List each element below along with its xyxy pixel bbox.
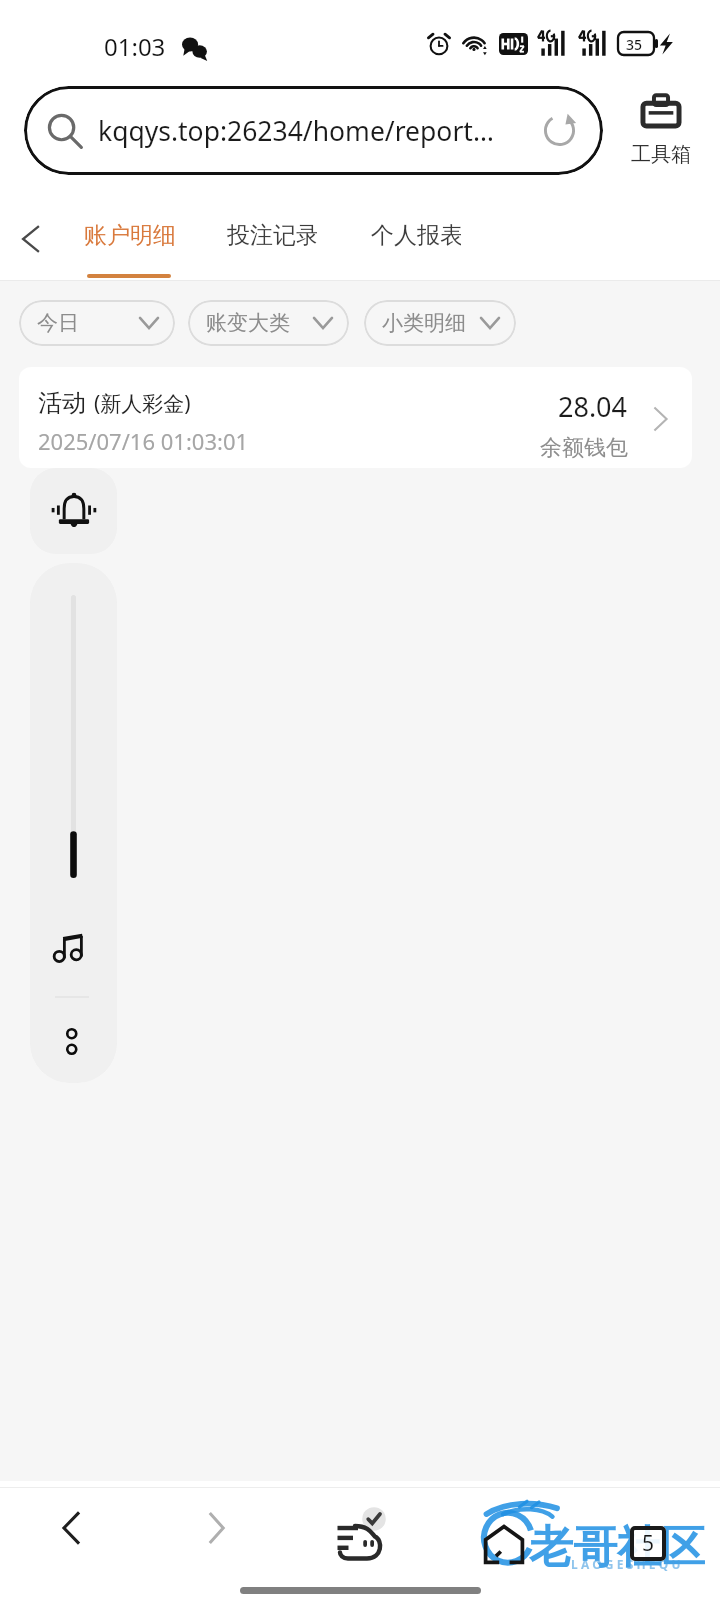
button[interactable]: Tabs <box>613 1508 683 1578</box>
button[interactable]: 账变大类 <box>188 300 349 346</box>
button[interactable]: 投注记录 <box>227 221 317 250</box>
button[interactable]: Home <box>469 1509 539 1579</box>
staticText: 投注记录 <box>227 221 317 250</box>
staticText: 活动 <box>38 388 86 418</box>
staticText: 01:03 <box>104 30 166 63</box>
button[interactable]: 小类明细 <box>364 300 516 346</box>
other: Refresh <box>541 112 578 149</box>
staticText: 2025/07/16 01:03:01 <box>38 426 249 456</box>
button[interactable]: Back <box>0 206 62 272</box>
button[interactable]: 工具箱 <box>622 90 700 167</box>
staticText: 老哥社区 <box>529 1520 705 1575</box>
button[interactable]: 活动 <box>19 367 692 468</box>
staticText: 35 <box>626 35 643 54</box>
staticText: LAOGESHEQU <box>571 1556 684 1572</box>
staticText: 5 <box>642 1529 655 1558</box>
staticText: kqqys.top:26234/home/report… <box>98 113 494 149</box>
button[interactable]: Ring mode <box>30 468 117 554</box>
staticText: 小类明细 <box>382 310 466 336</box>
other: Sound <box>53 934 86 963</box>
button[interactable]: 今日 <box>19 300 175 346</box>
staticText: 余额钱包 <box>540 434 628 462</box>
button[interactable]: 账户明细 <box>84 221 174 278</box>
staticText: 28.04 <box>558 388 628 425</box>
button[interactable]: kqqys.top:26234/home/report… <box>24 86 603 175</box>
staticText: 个人报表 <box>371 221 461 250</box>
staticText: 今日 <box>37 310 79 336</box>
button[interactable]: Menu <box>322 1495 398 1571</box>
other: More <box>60 1025 84 1057</box>
button[interactable]: 个人报表 <box>371 221 461 250</box>
staticText: 账变大类 <box>206 310 290 336</box>
button[interactable]: Back <box>36 1493 106 1563</box>
staticText: (新人彩金) <box>94 389 191 418</box>
button[interactable]: Forward <box>181 1493 251 1563</box>
staticText: 工具箱 <box>631 142 691 167</box>
staticText: 账户明细 <box>84 221 174 250</box>
